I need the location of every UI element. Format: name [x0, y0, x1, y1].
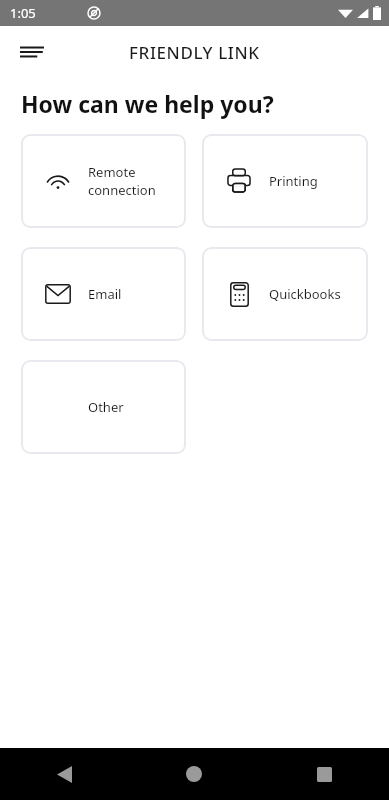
staticText: Printing	[269, 172, 318, 190]
staticText: Email	[88, 285, 122, 303]
staticText: 1:05	[10, 4, 36, 22]
button[interactable]: Menu	[12, 32, 52, 72]
staticText: How can we help you?	[21, 88, 274, 119]
button[interactable]: Back	[0, 748, 129, 800]
staticText: FRIENDLY LINK	[129, 41, 260, 64]
staticText: Remote connection	[88, 163, 156, 199]
button[interactable]: Printing	[202, 134, 368, 228]
staticText: Quickbooks	[269, 285, 341, 303]
button[interactable]: Quickbooks	[202, 247, 368, 341]
button[interactable]: Home	[129, 748, 259, 800]
staticText: Other	[88, 398, 124, 416]
button[interactable]: Remote connection	[21, 134, 186, 228]
button[interactable]: Email	[21, 247, 186, 341]
button[interactable]: Other	[21, 360, 186, 454]
button[interactable]: Recent apps	[259, 748, 389, 800]
